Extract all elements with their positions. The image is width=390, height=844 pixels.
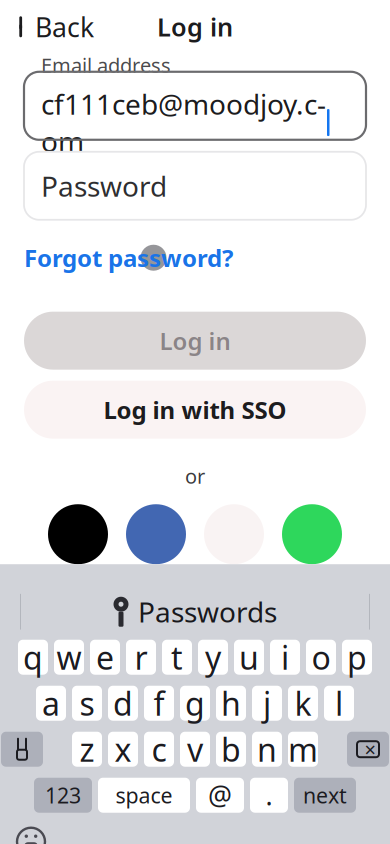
- staticText: Passwords: [138, 593, 277, 630]
- staticText: or: [185, 463, 205, 489]
- button[interactable]: u: [234, 640, 264, 675]
- button[interactable]: Continue with Facebook: [126, 504, 186, 564]
- button[interactable]: Log in: [24, 312, 366, 370]
- staticText: c: [151, 728, 166, 770]
- button[interactable]: Continue with Apple: [48, 504, 108, 564]
- staticText: next: [303, 781, 347, 809]
- button[interactable]: Email address: [24, 72, 366, 140]
- button[interactable]: l: [324, 686, 354, 721]
- staticText: g: [185, 682, 205, 724]
- staticText: Forgot password?: [24, 242, 233, 274]
- button[interactable]: Forgot password?: [24, 234, 233, 282]
- staticText: Log in: [157, 10, 233, 44]
- staticText: y: [205, 636, 221, 678]
- staticText: space: [115, 781, 172, 809]
- staticText: i: [281, 636, 289, 678]
- button[interactable]: Passwords: [99, 587, 291, 636]
- button[interactable]: k: [288, 686, 318, 721]
- button[interactable]: Password: [24, 152, 366, 220]
- staticText: 123: [45, 781, 81, 809]
- staticText: u: [239, 636, 259, 678]
- staticText: Log in: [159, 325, 230, 357]
- staticText: a: [42, 682, 60, 724]
- staticText: j: [263, 682, 271, 724]
- button[interactable]: i: [270, 640, 300, 675]
- button[interactable]: Emoji: [0, 823, 46, 844]
- staticText: x: [114, 728, 131, 770]
- staticText: d: [113, 682, 133, 724]
- button[interactable]: n: [252, 732, 282, 767]
- button[interactable]: Log in with SSO: [24, 381, 366, 439]
- button[interactable]: Delete: [347, 732, 389, 767]
- button[interactable]: Shift: [1, 732, 43, 767]
- staticText: s: [79, 682, 94, 724]
- button[interactable]: c: [144, 732, 174, 767]
- button[interactable]: Continue with WeChat: [282, 504, 342, 564]
- staticText: w: [56, 636, 81, 678]
- button[interactable]: d: [108, 686, 138, 721]
- staticText: h: [221, 682, 241, 724]
- button[interactable]: h: [216, 686, 246, 721]
- button[interactable]: q: [18, 640, 48, 675]
- staticText: t: [171, 636, 183, 678]
- button[interactable]: t: [162, 640, 192, 675]
- button[interactable]: w: [54, 640, 84, 675]
- staticText: Email address: [41, 52, 171, 78]
- button[interactable]: e: [90, 640, 120, 675]
- button[interactable]: b: [216, 732, 246, 767]
- button[interactable]: j: [252, 686, 282, 721]
- staticText: ×: [364, 736, 375, 762]
- button[interactable]: f: [144, 686, 174, 721]
- staticText: n: [257, 728, 277, 770]
- staticText: e: [96, 636, 114, 678]
- button[interactable]: s: [72, 686, 102, 721]
- staticText: @: [208, 777, 232, 813]
- staticText: v: [187, 728, 203, 770]
- button[interactable]: p: [342, 640, 372, 675]
- button[interactable]: z: [72, 732, 102, 767]
- staticText: Password: [41, 167, 167, 204]
- staticText: Back: [35, 9, 94, 44]
- button[interactable]: 123: [34, 778, 92, 813]
- staticText: Log in with SSO: [103, 394, 286, 426]
- button[interactable]: v: [180, 732, 210, 767]
- staticText: k: [294, 682, 311, 724]
- staticText: b: [221, 728, 241, 770]
- button[interactable]: @: [196, 778, 244, 813]
- button[interactable]: Continue with Google: [204, 504, 264, 564]
- staticText: m: [288, 728, 318, 770]
- staticText: cf111ceb@moodjoy.com: [41, 85, 326, 160]
- button[interactable]: a: [36, 686, 66, 721]
- button[interactable]: next: [294, 778, 356, 813]
- staticText: q: [23, 636, 43, 678]
- staticText: p: [347, 636, 367, 678]
- staticText: l: [335, 682, 343, 724]
- button[interactable]: g: [180, 686, 210, 721]
- staticText: .: [265, 777, 272, 813]
- button[interactable]: .: [250, 778, 288, 813]
- button[interactable]: o: [306, 640, 336, 675]
- staticText: o: [311, 636, 330, 678]
- button[interactable]: m: [288, 732, 318, 767]
- button[interactable]: y: [198, 640, 228, 675]
- staticText: r: [134, 636, 147, 678]
- button[interactable]: Back: [6, 1, 104, 52]
- staticText: f: [153, 682, 164, 724]
- button[interactable]: r: [126, 640, 156, 675]
- staticText: z: [79, 728, 94, 770]
- button[interactable]: space: [98, 778, 190, 813]
- button[interactable]: x: [108, 732, 138, 767]
